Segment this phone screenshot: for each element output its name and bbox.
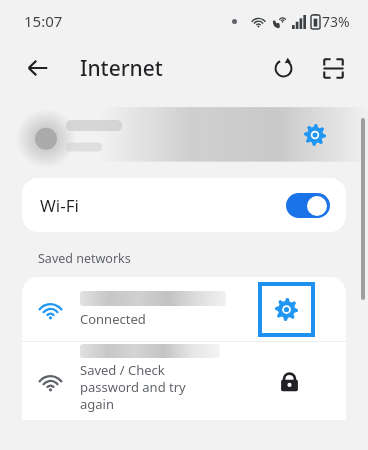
button[interactable]: Saved / Check password and try again <box>22 342 346 420</box>
staticText: 15:07 <box>24 11 63 31</box>
button[interactable]: Wi-Fi toggle <box>286 193 330 218</box>
button[interactable]: Back <box>16 46 60 90</box>
staticText: Saved / Check password and try again <box>80 361 186 413</box>
button[interactable]: Wi-Fi <box>22 178 346 232</box>
button[interactable]: Scan QR code <box>312 47 354 89</box>
button[interactable]: Refresh <box>262 47 304 89</box>
staticText: Connected <box>80 310 146 328</box>
staticText: Wi-Fi <box>40 194 79 217</box>
staticText: 73% <box>322 12 350 31</box>
staticText: Internet <box>80 54 163 83</box>
button[interactable]: Network details settings <box>262 286 311 333</box>
button[interactable]: Network settings <box>0 104 368 166</box>
button[interactable]: Network settings <box>298 118 332 152</box>
staticText: Saved networks <box>38 250 131 267</box>
other: Secured network <box>274 366 304 396</box>
button[interactable]: Connected <box>22 277 346 341</box>
